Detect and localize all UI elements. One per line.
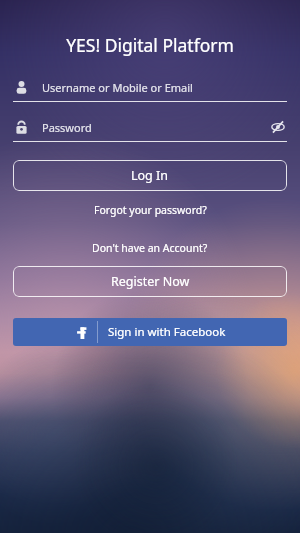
staticText: Forgot your password? xyxy=(94,203,207,217)
button[interactable]: Register Now xyxy=(13,266,287,297)
staticText: YES! Digital Platform xyxy=(66,33,234,57)
button[interactable]: Password xyxy=(13,116,287,142)
button[interactable]: Show password xyxy=(269,118,287,136)
button[interactable]: Username or Mobile or Email xyxy=(13,76,287,102)
button[interactable]: Log In xyxy=(13,160,287,191)
staticText: Don't have an Account? xyxy=(92,241,208,255)
staticText: Username or Mobile or Email xyxy=(42,80,287,95)
button[interactable]: Forgot your password? xyxy=(86,201,215,219)
staticText: Log In xyxy=(131,167,169,184)
staticText: Password xyxy=(42,120,269,135)
staticText: Sign in with Facebook xyxy=(108,324,226,340)
button[interactable]: Sign in with Facebook xyxy=(13,318,287,346)
staticText: Register Now xyxy=(111,273,190,290)
